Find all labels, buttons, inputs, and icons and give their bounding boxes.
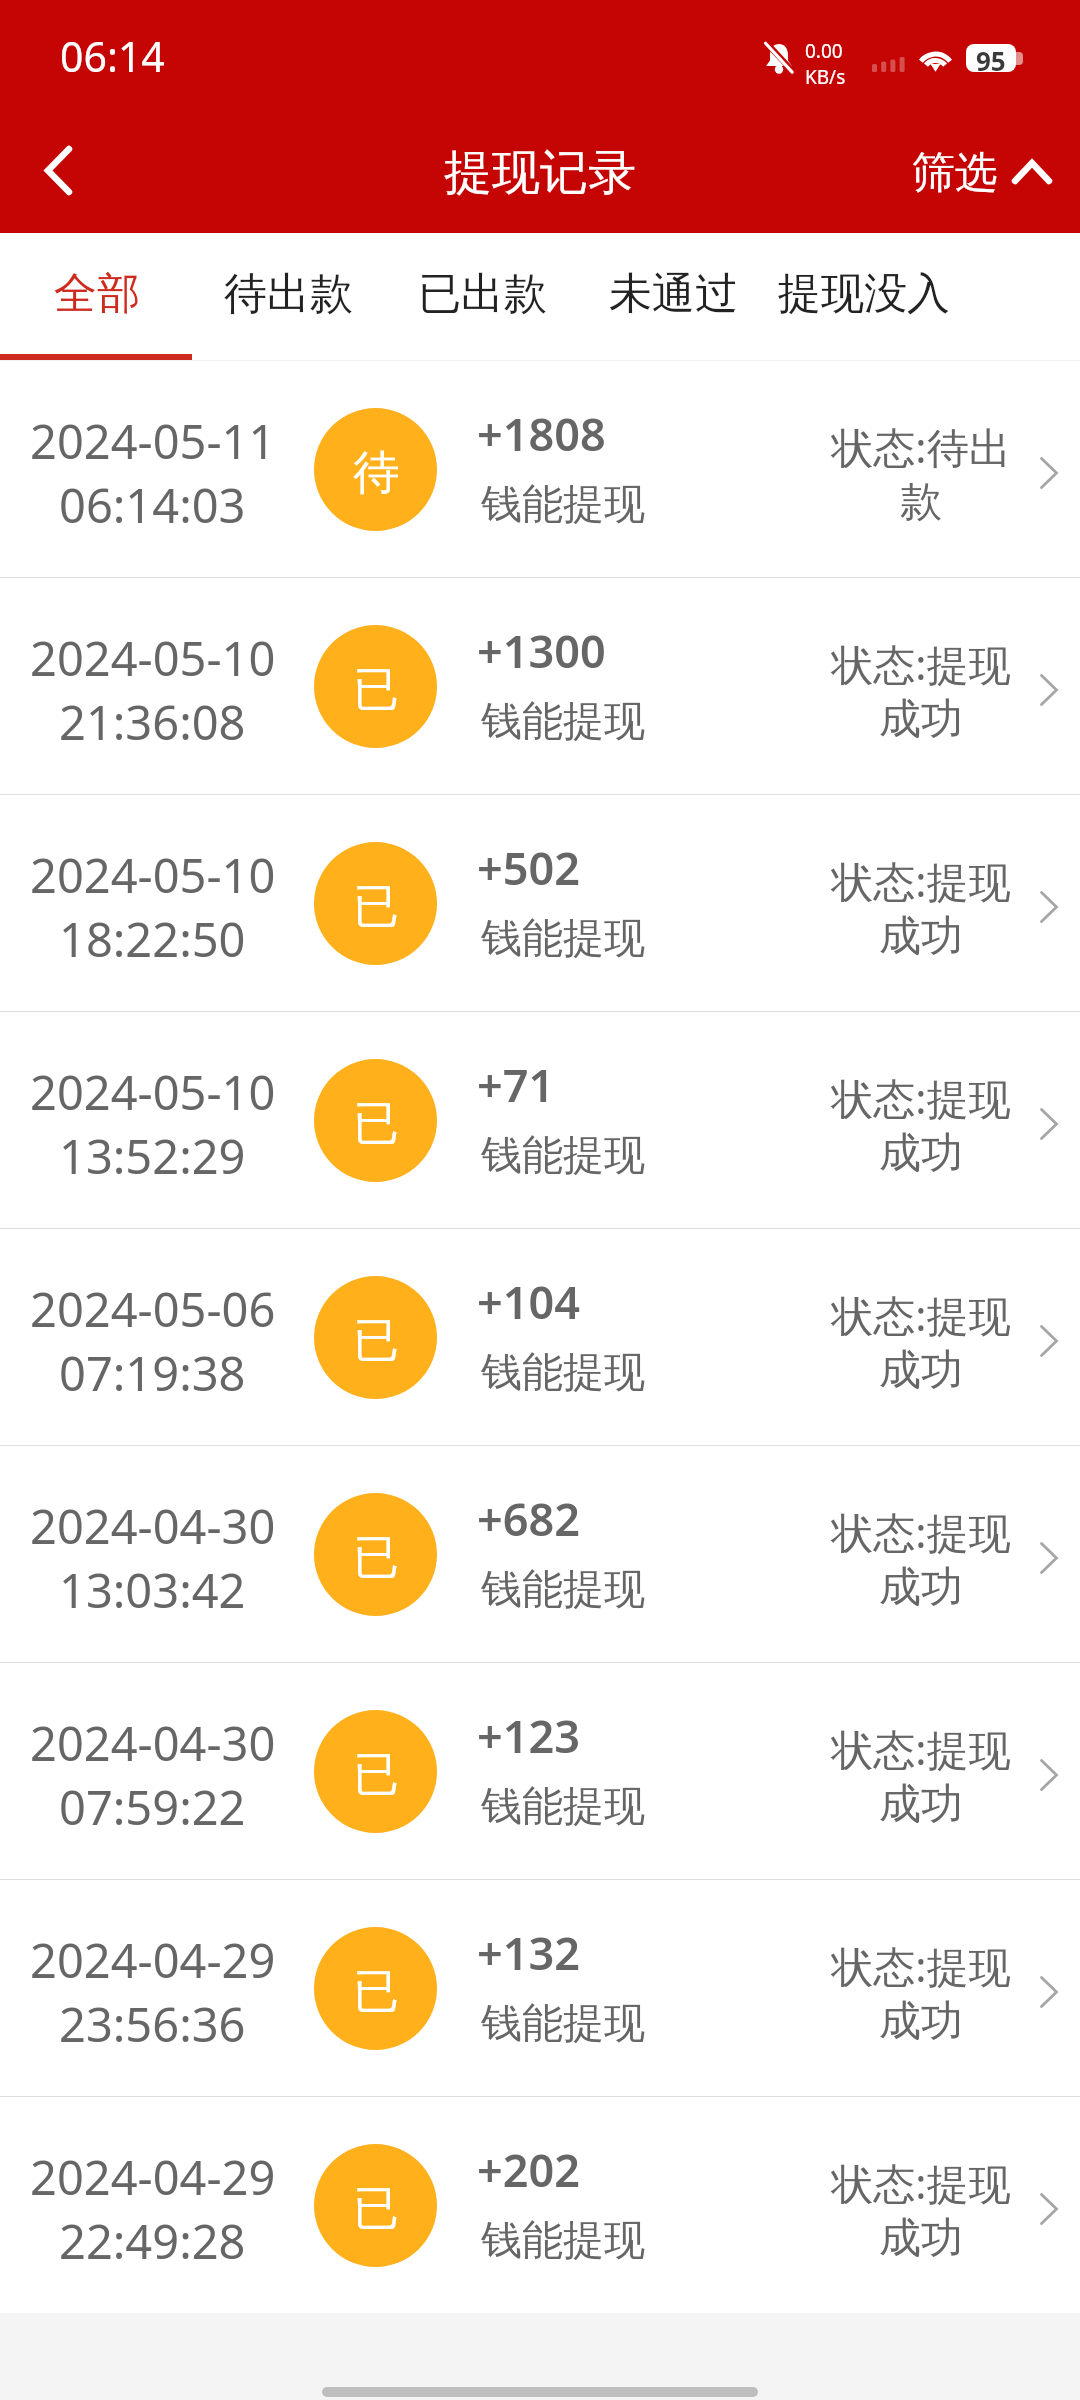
staticText: +1300	[477, 620, 606, 681]
staticText: 已	[353, 1963, 399, 2021]
staticText: 提现记录	[444, 143, 636, 203]
staticText: 钱能提现	[481, 1998, 645, 2050]
staticText: 状态:提现成功	[830, 1937, 1012, 2047]
staticText: 2024-05-11	[30, 409, 276, 473]
staticText: 21:36:08	[59, 690, 246, 754]
button[interactable]: 2024-05-06	[0, 1229, 1080, 1445]
button[interactable]: 提现没入	[764, 233, 964, 355]
staticText: 已	[353, 661, 399, 719]
staticText: 已	[353, 1312, 399, 1370]
staticText: 23:56:36	[59, 1992, 246, 2056]
staticText: 已出款	[418, 267, 547, 321]
staticText: 2024-04-29	[30, 1928, 276, 1992]
other: Details	[1040, 1976, 1058, 2008]
other: Details	[1040, 2193, 1058, 2225]
button[interactable]: Back	[2, 118, 114, 230]
button[interactable]: 2024-05-11	[0, 361, 1080, 577]
button[interactable]: 2024-05-10	[0, 1012, 1080, 1228]
staticText: 2024-05-10	[30, 1060, 276, 1124]
staticText: 钱能提现	[481, 1347, 645, 1399]
staticText: +202	[477, 2139, 580, 2200]
staticText: 2024-04-30	[30, 1711, 276, 1775]
staticText: 已	[353, 2180, 399, 2238]
staticText: 已	[353, 1095, 399, 1153]
other: Details	[1040, 1325, 1058, 1357]
button[interactable]: 全部	[42, 233, 152, 355]
other: Details	[1040, 674, 1058, 706]
staticText: 钱能提现	[481, 1130, 645, 1182]
staticText: 2024-05-10	[30, 626, 276, 690]
button[interactable]: 2024-04-30	[0, 1663, 1080, 1879]
staticText: +104	[477, 1271, 580, 1332]
staticText: 钱能提现	[481, 696, 645, 748]
staticText: 06:14:03	[59, 473, 246, 537]
staticText: 2024-05-10	[30, 843, 276, 907]
staticText: 状态:提现成功	[830, 1069, 1012, 1179]
staticText: 状态:提现成功	[830, 852, 1012, 962]
staticText: 13:03:42	[59, 1558, 246, 1622]
staticText: 95	[976, 44, 1006, 71]
staticText: 钱能提现	[481, 913, 645, 965]
staticText: 2024-05-06	[30, 1277, 276, 1341]
staticText: 状态:提现成功	[830, 635, 1012, 745]
button[interactable]: 筛选	[912, 147, 1052, 201]
staticText: 状态:提现成功	[830, 1286, 1012, 1396]
other: Details	[1040, 1759, 1058, 1791]
staticText: KB/s	[805, 64, 846, 90]
staticText: +1808	[477, 403, 606, 464]
staticText: 18:22:50	[59, 907, 246, 971]
staticText: +502	[477, 837, 580, 898]
staticText: 状态:提现成功	[830, 2154, 1012, 2264]
staticText: 已	[353, 878, 399, 936]
staticText: 钱能提现	[481, 1781, 645, 1833]
staticText: 07:19:38	[59, 1341, 246, 1405]
staticText: 钱能提现	[481, 2215, 645, 2267]
button[interactable]: 2024-04-30	[0, 1446, 1080, 1662]
staticText: 13:52:29	[59, 1124, 246, 1188]
staticText: 状态:提现成功	[830, 1720, 1012, 1830]
staticText: 钱能提现	[481, 479, 645, 531]
staticText: +71	[477, 1054, 555, 1115]
staticText: +123	[477, 1705, 580, 1766]
button[interactable]: 2024-05-10	[0, 578, 1080, 794]
other: Details	[1040, 891, 1058, 923]
staticText: 钱能提现	[481, 1564, 645, 1616]
staticText: 状态:待出款	[830, 418, 1012, 528]
staticText: 22:49:28	[59, 2209, 246, 2273]
other: Details	[1040, 1542, 1058, 1574]
staticText: +682	[477, 1488, 580, 1549]
staticText: 0.00	[805, 38, 843, 64]
staticText: +132	[477, 1922, 580, 1983]
button[interactable]: 待出款	[208, 233, 368, 355]
staticText: 待出款	[224, 267, 353, 321]
staticText: 06:14	[60, 28, 165, 84]
staticText: 未通过	[609, 267, 738, 321]
other: Details	[1040, 1108, 1058, 1140]
staticText: 筛选	[912, 146, 998, 200]
staticText: 已	[353, 1529, 399, 1587]
staticText: 提现没入	[778, 267, 950, 321]
staticText: 2024-04-29	[30, 2145, 276, 2209]
button[interactable]: 2024-04-29	[0, 2097, 1080, 2313]
button[interactable]: 2024-04-29	[0, 1880, 1080, 2096]
button[interactable]: 未通过	[593, 233, 753, 355]
staticText: 2024-04-30	[30, 1494, 276, 1558]
staticText: 07:59:22	[59, 1775, 246, 1839]
staticText: 状态:提现成功	[830, 1503, 1012, 1613]
staticText: 已	[353, 1746, 399, 1804]
staticText: 全部	[54, 267, 140, 321]
staticText: 待	[353, 444, 399, 502]
button[interactable]: 已出款	[402, 233, 562, 355]
button[interactable]: 2024-05-10	[0, 795, 1080, 1011]
other: Details	[1040, 457, 1058, 489]
